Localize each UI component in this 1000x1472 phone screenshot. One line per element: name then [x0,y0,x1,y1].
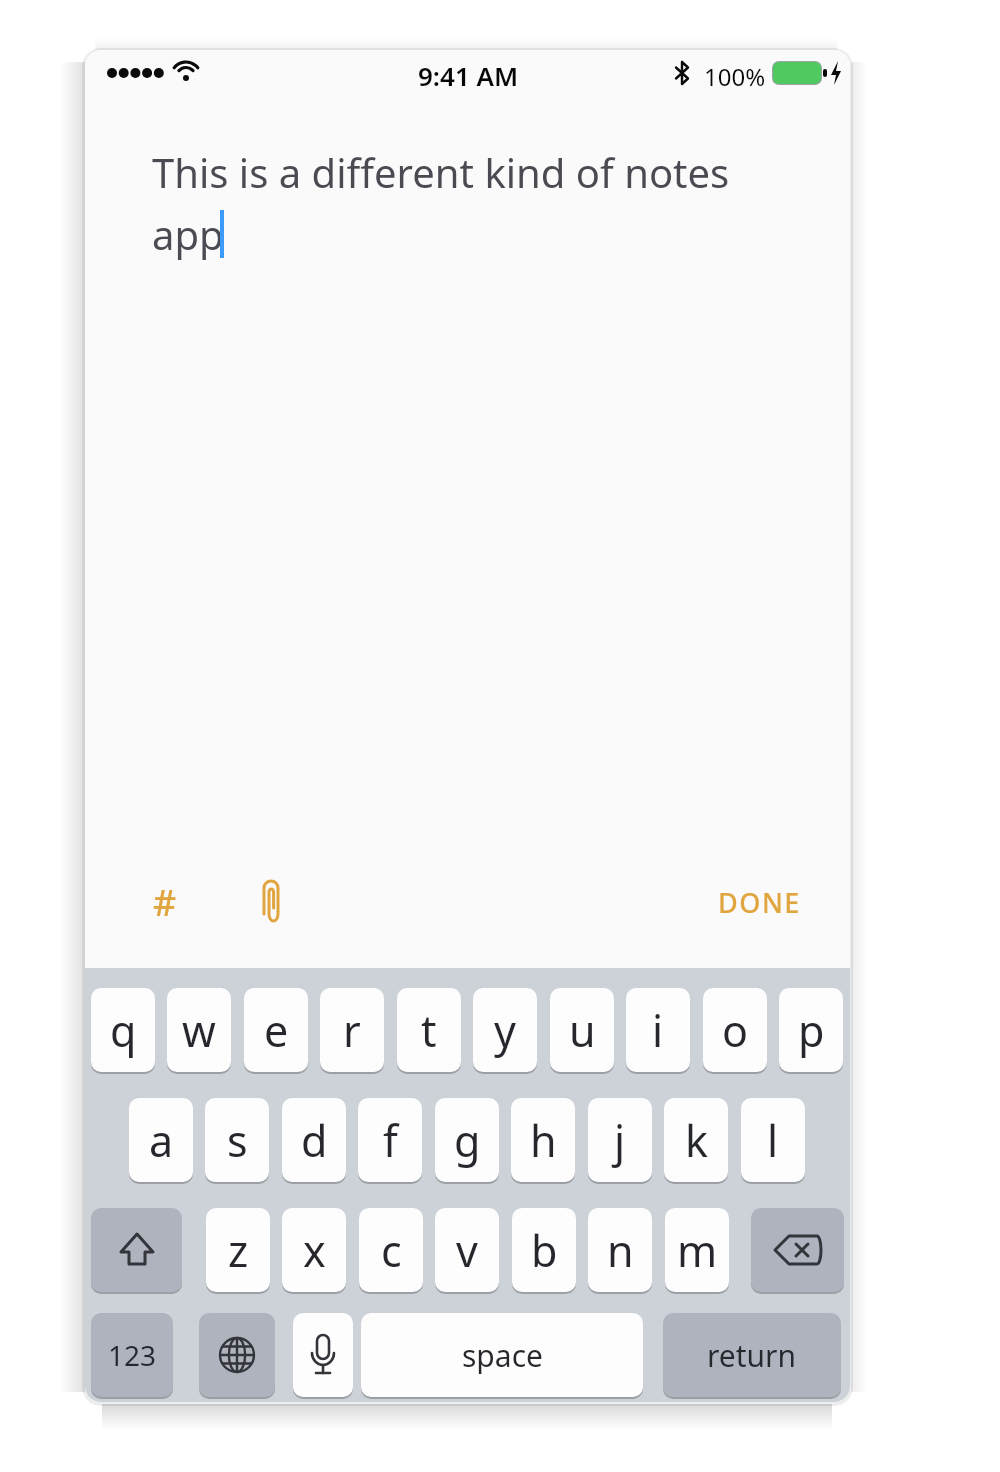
staticText: This is a different kind of notes [152,145,730,199]
staticText: l [767,1111,779,1170]
staticText: y [494,1001,516,1060]
staticText: 100% [704,60,766,86]
button[interactable]: l [741,1098,805,1182]
button[interactable]: j [588,1098,652,1182]
staticText: h [530,1111,557,1170]
button[interactable]: c [359,1208,423,1292]
staticText: 123 [108,1336,157,1374]
button[interactable]: o [703,988,767,1072]
button[interactable]: y [473,988,537,1072]
button[interactable]: u [550,988,614,1072]
staticText: 9:41 AM [418,58,519,88]
button[interactable] [293,1313,353,1397]
button[interactable] [91,1208,182,1292]
staticText: space [462,1335,543,1376]
button[interactable]: f [358,1098,422,1182]
staticText: r [343,1001,361,1060]
button[interactable]: p [779,988,843,1072]
staticText: m [677,1221,718,1280]
staticText: i [652,1001,664,1060]
staticText: a [149,1111,174,1170]
staticText: DONE [718,884,801,920]
staticText: z [228,1221,249,1280]
staticText: t [421,1001,437,1060]
staticText: p [798,1001,825,1060]
staticText: app [152,207,224,261]
staticText: u [569,1001,596,1060]
staticText: o [722,1001,749,1060]
button[interactable]: x [282,1208,346,1292]
button[interactable]: DONE [717,884,801,920]
staticText: g [454,1111,481,1170]
staticText: c [381,1221,402,1280]
button[interactable] [253,878,289,926]
button[interactable]: w [167,988,231,1072]
button[interactable]: a [129,1098,193,1182]
button[interactable]: space [361,1313,643,1397]
button[interactable]: # [145,878,185,924]
button[interactable]: t [397,988,461,1072]
button[interactable]: v [435,1208,499,1292]
button[interactable]: d [282,1098,346,1182]
button[interactable]: n [588,1208,652,1292]
staticText: j [614,1111,626,1170]
button[interactable]: return [663,1313,841,1397]
staticText: e [264,1001,289,1060]
button[interactable]: z [206,1208,270,1292]
staticText: s [227,1111,248,1170]
staticText: x [303,1221,326,1280]
staticText: v [456,1221,478,1280]
button[interactable]: e [244,988,308,1072]
staticText: b [531,1221,558,1280]
button[interactable]: b [512,1208,576,1292]
button[interactable]: i [626,988,690,1072]
staticText: w [182,1001,216,1060]
button[interactable]: s [205,1098,269,1182]
staticText: n [607,1221,634,1280]
button[interactable]: g [435,1098,499,1182]
button[interactable] [751,1208,844,1292]
staticText: # [153,878,177,924]
button[interactable]: h [511,1098,575,1182]
button[interactable] [199,1313,275,1397]
button[interactable]: r [320,988,384,1072]
button[interactable]: q [91,988,155,1072]
staticText: return [707,1335,797,1376]
staticText: k [685,1111,708,1170]
staticText: d [301,1111,328,1170]
staticText: f [383,1111,398,1170]
button[interactable]: 123 [91,1313,173,1397]
button[interactable]: m [665,1208,729,1292]
button[interactable]: k [664,1098,728,1182]
staticText: q [110,1001,137,1060]
